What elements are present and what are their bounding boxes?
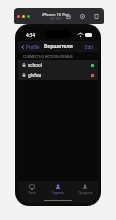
staticText: Профиль <box>78 191 93 195</box>
staticText: iOS 18.5 <box>50 17 62 21</box>
button[interactable]: Settings <box>79 13 86 20</box>
button[interactable]: Профиль <box>72 183 98 196</box>
staticText: Profile <box>26 44 40 50</box>
staticText: Чаты <box>28 191 36 195</box>
button[interactable]: Группы <box>45 183 71 196</box>
button[interactable]: Чаты <box>19 183 45 196</box>
staticText: iPhone 16 Pro <box>42 12 69 17</box>
staticText: Вершители <box>44 43 73 50</box>
staticText: Группы <box>52 191 64 195</box>
staticText: СОВМЕСТНО ИСПОЛЬЗУЕМЫЕ <box>23 54 73 59</box>
button[interactable]: Rotate <box>93 13 100 20</box>
staticText: Edit <box>85 44 94 50</box>
button[interactable]: glsfuu <box>18 70 98 80</box>
button[interactable]: Profile <box>21 44 40 50</box>
button[interactable]: school <box>18 60 98 70</box>
staticText: school <box>28 62 42 68</box>
staticText: 4:34 <box>26 32 35 38</box>
button[interactable]: Edit <box>85 44 94 50</box>
button[interactable]: Home <box>65 13 72 20</box>
staticText: glsfuu <box>28 72 42 78</box>
